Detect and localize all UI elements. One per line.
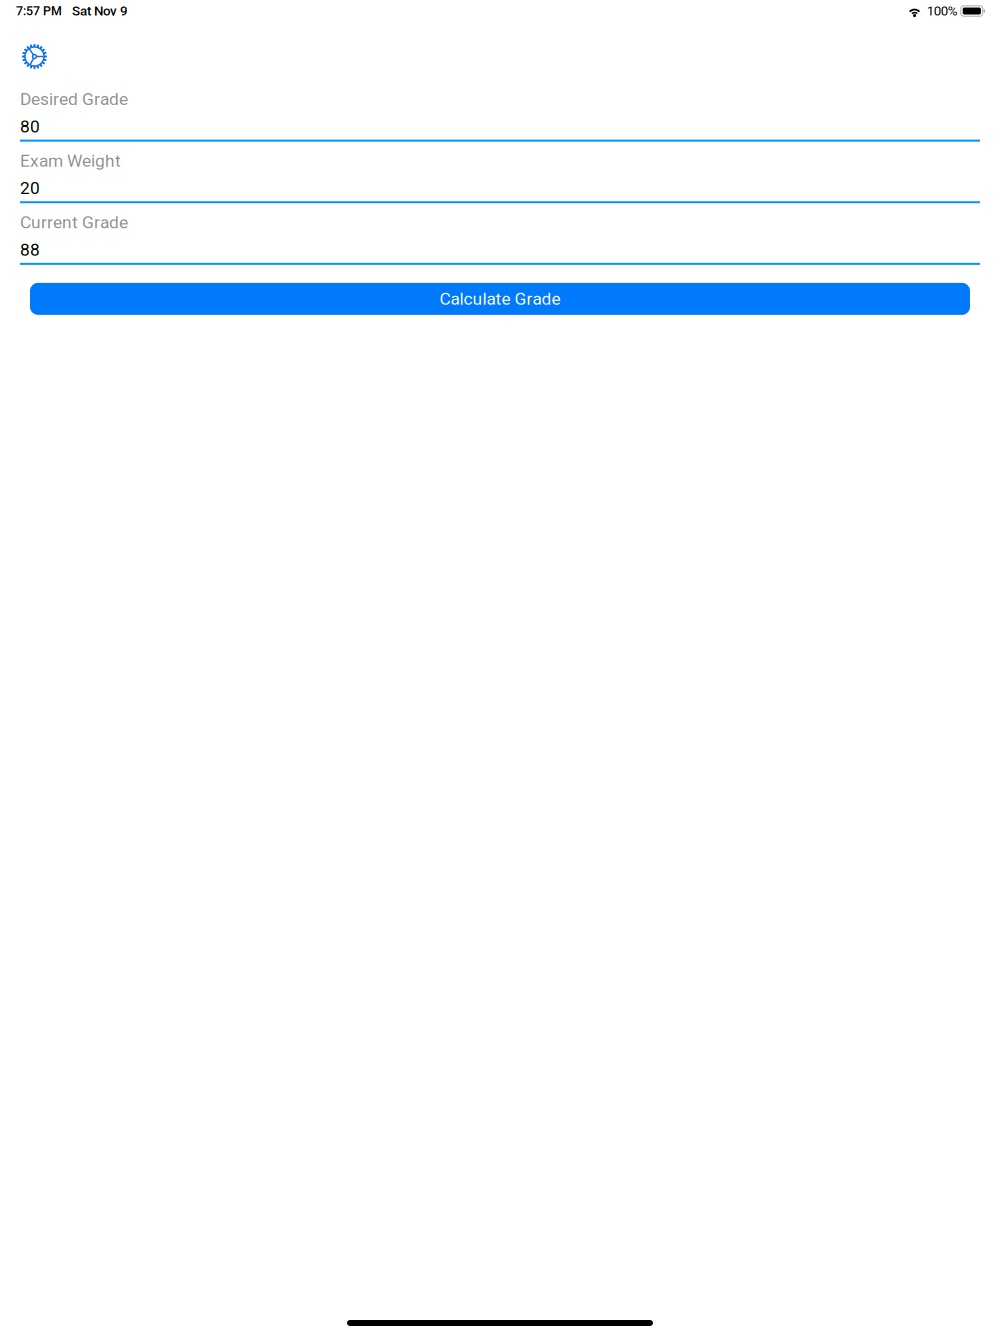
button[interactable]: Calculate Grade: [30, 283, 970, 315]
staticText: 88: [20, 240, 40, 260]
staticText: 80: [20, 116, 40, 137]
staticText: Current Grade: [20, 212, 128, 232]
staticText: Sat Nov 9: [72, 3, 128, 19]
staticText: 7:57 PM: [16, 4, 62, 18]
button[interactable]: Desired Grade: [20, 89, 980, 142]
staticText: Exam Weight: [20, 151, 121, 171]
staticText: Calculate Grade: [439, 289, 560, 309]
button[interactable]: Exam Weight: [20, 151, 980, 203]
staticText: Desired Grade: [20, 89, 128, 109]
staticText: 20: [20, 178, 40, 198]
staticText: 100%: [927, 3, 958, 19]
button[interactable]: Settings: [0, 22, 67, 89]
button[interactable]: Current Grade: [20, 212, 980, 265]
